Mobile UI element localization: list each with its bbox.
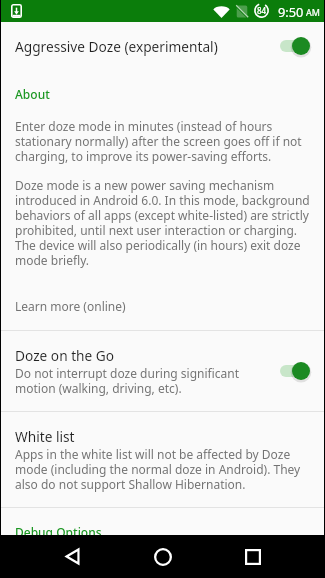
staticText: AM <box>306 6 320 18</box>
button[interactable]: Learn more (online) <box>0 268 325 330</box>
button[interactable]: Recent apps <box>230 535 275 578</box>
button[interactable]: Aggressive Doze (experimental) <box>0 22 325 70</box>
staticText: Doze mode is a new power saving mechanis… <box>15 177 311 268</box>
button[interactable]: Toggle <box>280 35 311 57</box>
staticText: Do not interrupt doze during significant… <box>15 365 270 396</box>
button[interactable]: White list <box>0 412 325 507</box>
staticText: Debug Options <box>15 524 102 535</box>
button[interactable]: Home <box>140 535 185 578</box>
staticText: Apps in the white list will not be affec… <box>15 446 311 492</box>
staticText: White list <box>15 427 75 446</box>
staticText: About <box>15 86 50 102</box>
staticText: Aggressive Doze (experimental) <box>15 37 270 56</box>
staticText: 9:50 <box>278 3 304 20</box>
button[interactable]: Toggle <box>280 360 311 382</box>
staticText: Doze on the Go <box>15 346 115 365</box>
staticText: Enter doze mode in minutes (instead of h… <box>15 118 311 164</box>
staticText: 84 <box>257 5 267 16</box>
staticText: Learn more (online) <box>15 298 126 314</box>
other: Download <box>11 4 22 18</box>
button[interactable]: Doze on the Go <box>0 331 325 411</box>
button[interactable]: Back <box>50 535 95 578</box>
